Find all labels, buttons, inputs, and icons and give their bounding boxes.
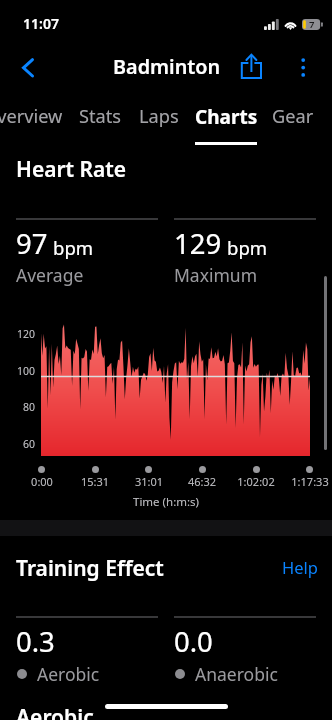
button[interactable]: Share <box>231 44 272 88</box>
staticText: 100 <box>8 364 35 378</box>
button[interactable]: Laps <box>139 104 179 129</box>
staticText: 60 <box>8 437 35 451</box>
staticText: Gear <box>272 104 314 129</box>
staticText: 80 <box>8 400 35 414</box>
staticText: 0:00 <box>12 474 72 489</box>
staticText: 97 <box>16 225 48 262</box>
staticText: 1:17:33 <box>280 474 332 489</box>
staticText: Time (h:m:s) <box>0 494 332 510</box>
staticText: Badminton <box>113 53 221 80</box>
staticText: Help <box>282 556 318 578</box>
staticText: 31:01 <box>119 474 179 489</box>
staticText: Aerobic <box>16 703 94 720</box>
staticText: 120 <box>8 327 35 341</box>
staticText: 11:07 <box>23 14 59 33</box>
staticText: Average <box>16 263 84 287</box>
staticText: 7 <box>309 18 315 31</box>
button[interactable]: Overview <box>0 104 63 129</box>
staticText: bpm <box>227 235 268 260</box>
button[interactable]: Stats <box>79 104 122 129</box>
staticText: 0.0 <box>174 623 213 660</box>
staticText: Heart Rate <box>16 155 127 184</box>
button[interactable]: Help <box>282 556 318 578</box>
staticText: bpm <box>53 235 94 260</box>
staticText: Laps <box>139 104 179 129</box>
staticText: Maximum <box>174 263 258 287</box>
staticText: 1:02:02 <box>226 474 286 489</box>
staticText: Charts <box>195 104 258 130</box>
staticText: 46:32 <box>172 474 232 489</box>
staticText: 129 <box>174 225 222 262</box>
button[interactable]: Gear <box>272 104 314 129</box>
staticText: Anaerobic <box>195 662 278 686</box>
staticText: Aerobic <box>37 662 100 686</box>
button[interactable]: More options <box>285 44 323 88</box>
staticText: 15:31 <box>65 474 125 489</box>
staticText: 0.3 <box>16 623 55 660</box>
button[interactable]: Charts <box>195 104 258 130</box>
button[interactable]: Back <box>6 45 50 89</box>
staticText: Overview <box>0 104 63 129</box>
staticText: Training Effect <box>16 554 164 583</box>
staticText: Stats <box>79 104 122 129</box>
